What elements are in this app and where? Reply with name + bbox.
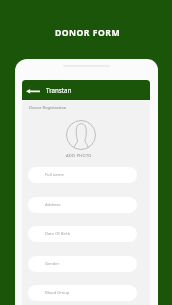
staticText: Gender bbox=[45, 261, 60, 267]
button[interactable]: Full name bbox=[28, 167, 137, 183]
button[interactable]: Address bbox=[28, 197, 137, 213]
button[interactable]: Blood Group bbox=[28, 285, 137, 301]
staticText: Address bbox=[45, 202, 61, 208]
staticText: ADD PHOTO bbox=[66, 153, 92, 158]
staticText: Date Of Birth bbox=[45, 231, 71, 237]
button[interactable]: Back bbox=[26, 84, 40, 96]
staticText: Full name bbox=[45, 172, 64, 178]
staticText: DONOR FORM bbox=[55, 27, 121, 39]
button[interactable]: Gender bbox=[28, 256, 137, 272]
staticText: Donor Registration bbox=[29, 105, 67, 111]
staticText: Transtan bbox=[46, 86, 72, 94]
staticText: Blood Group bbox=[45, 290, 70, 296]
button[interactable]: Back bbox=[22, 80, 150, 100]
button[interactable]: Add photo bbox=[66, 120, 96, 150]
button[interactable]: Date Of Birth bbox=[28, 226, 137, 242]
